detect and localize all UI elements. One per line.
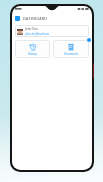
staticText: History: [28, 52, 37, 56]
staticText: Documents: [64, 52, 78, 56]
button[interactable]: New items badge: [87, 38, 91, 42]
button[interactable]: John Doe: [15, 25, 89, 37]
staticText: John Doe: [25, 27, 38, 31]
staticText: john.doe@mail.com: [25, 32, 50, 36]
staticText: DASHBOARD: [23, 16, 48, 21]
button[interactable]: App logo: [15, 16, 20, 21]
button[interactable]: History: [15, 40, 50, 58]
button[interactable]: Documents: [53, 40, 89, 58]
